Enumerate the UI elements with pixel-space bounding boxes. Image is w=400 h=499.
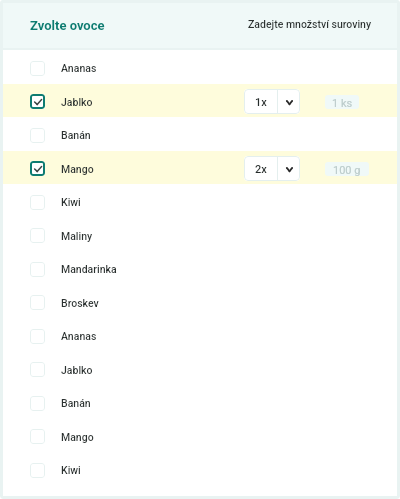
button[interactable]: 1x [244,89,300,114]
staticText: Maliny [61,230,93,242]
button[interactable]: Select ingredient [30,329,45,344]
staticText: 1x [255,96,267,109]
button[interactable]: Select ingredient [0,117,400,151]
staticText: Zvolte ovoce [30,18,105,33]
button[interactable]: Select ingredient [0,251,400,285]
staticText: Kiwi [61,464,81,476]
staticText: Zadejte množství suroviny [248,18,372,30]
button[interactable]: Select ingredient [0,84,400,117]
other: Open quantity dropdown [278,156,300,181]
staticText: Mango [61,163,94,175]
staticText: Jablko [61,364,93,376]
staticText: Broskev [61,297,99,309]
staticText: 2x [255,163,267,176]
button[interactable]: Select ingredient [0,50,400,84]
button[interactable]: Select ingredient [0,151,400,184]
button[interactable]: Select ingredient [30,161,45,176]
button[interactable]: Select ingredient [0,419,400,452]
staticText: Ananas [61,330,97,342]
staticText: Jablko [61,96,93,108]
button[interactable]: Select ingredient [30,195,45,210]
button[interactable]: Select ingredient [30,463,45,478]
staticText: Mango [61,431,94,443]
button[interactable]: Select ingredient [30,61,45,76]
button[interactable]: 2x [244,156,300,181]
staticText: Kiwi [61,196,81,208]
staticText: 100 g [333,164,361,176]
button[interactable]: Select ingredient [30,128,45,143]
button[interactable]: Select ingredient [30,262,45,277]
other: Open quantity dropdown [278,89,300,114]
staticText: Banán [61,397,91,409]
staticText: Ananas [61,62,97,74]
button[interactable]: Select ingredient [30,429,45,444]
button[interactable]: Select ingredient [0,452,400,486]
staticText: Banán [61,129,91,141]
button[interactable]: Select ingredient [0,184,400,218]
button[interactable]: Select ingredient [30,228,45,243]
button[interactable]: Select ingredient [30,362,45,377]
button[interactable]: Select ingredient [30,396,45,411]
button[interactable]: Select ingredient [0,218,400,251]
staticText: Mandarinka [61,263,117,275]
button[interactable]: Select ingredient [30,94,45,109]
button[interactable]: Select ingredient [30,295,45,310]
button[interactable]: Select ingredient [0,385,400,419]
button[interactable]: Select ingredient [0,285,400,318]
button[interactable]: Select ingredient [0,318,400,352]
staticText: 1 ks [332,97,353,109]
button[interactable]: Select ingredient [0,352,400,385]
